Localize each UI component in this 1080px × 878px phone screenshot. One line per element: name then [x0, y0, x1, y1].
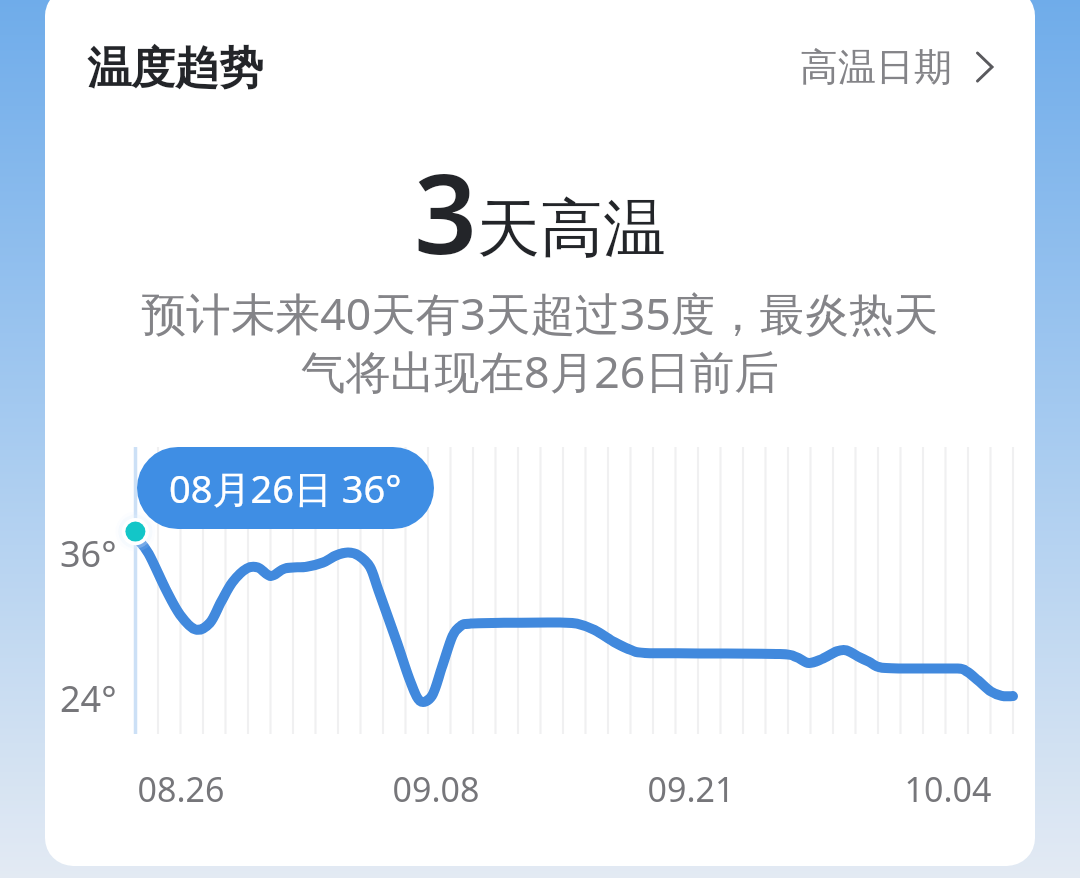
staticText: 高温日期 — [800, 43, 952, 91]
button[interactable]: 高温日期 — [790, 35, 1004, 99]
staticText: 08月26日 36° — [169, 462, 402, 514]
staticText: 3 — [414, 136, 477, 286]
button[interactable]: 08月26日 36° — [137, 447, 434, 529]
staticText: 24° — [60, 674, 117, 723]
staticText: 温度趋势 — [87, 41, 263, 96]
staticText: 09.08 — [356, 766, 516, 812]
staticText: 10.04 — [868, 766, 1028, 812]
staticText: 预计未来40天有3天超过35度，最炎热天 气将出现在8月26日前后 — [110, 282, 970, 401]
staticText: 36° — [60, 529, 117, 578]
staticText: 08.26 — [101, 766, 261, 812]
staticText: 天高温 — [477, 189, 666, 268]
button[interactable]: 温度趋势 — [79, 33, 271, 104]
staticText: 09.21 — [611, 766, 771, 812]
